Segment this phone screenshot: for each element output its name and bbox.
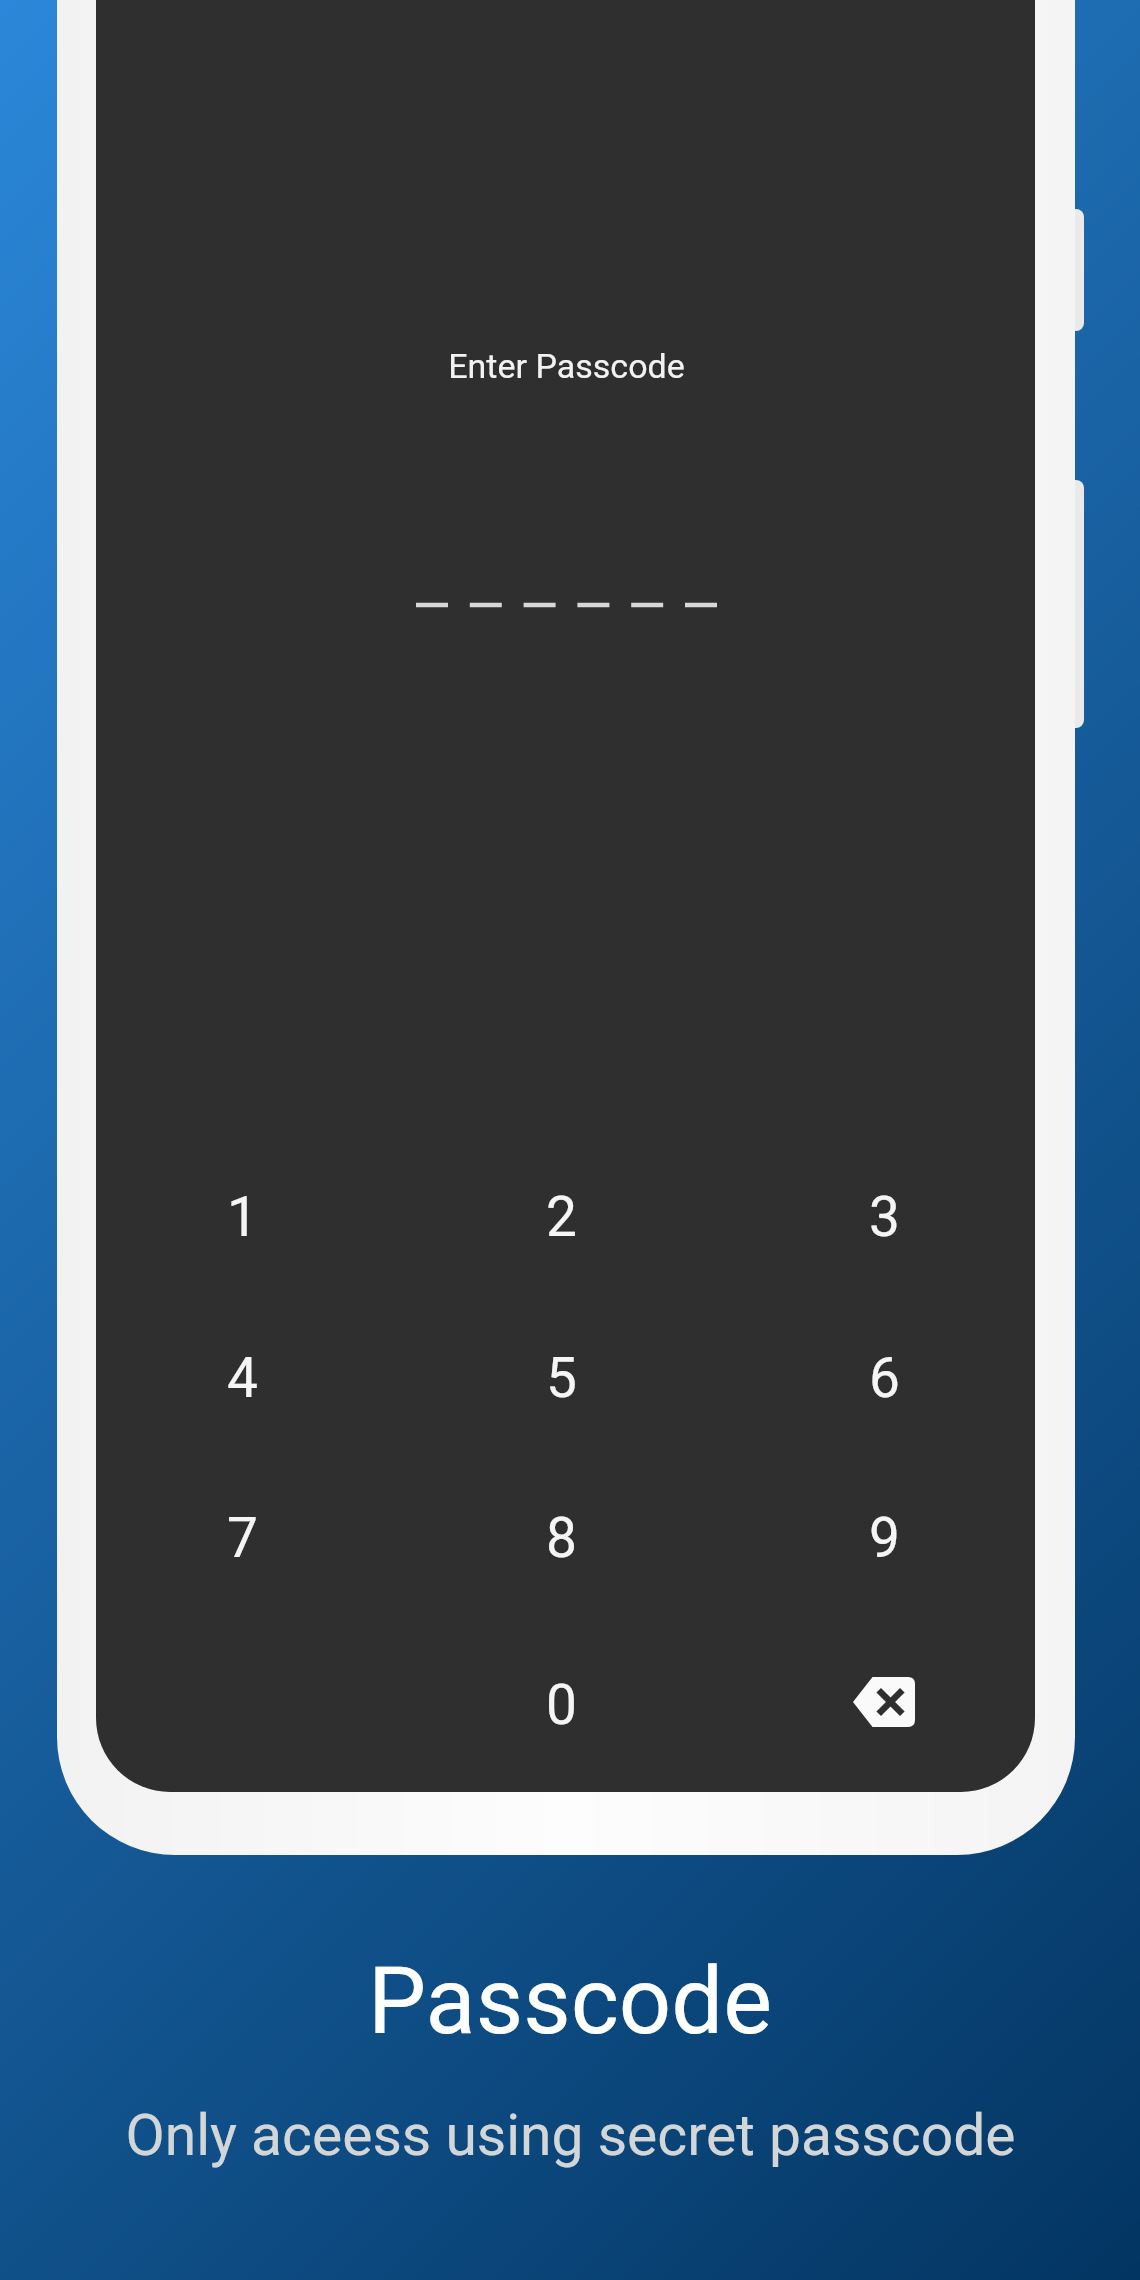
button[interactable]: 6	[784, 1296, 984, 1460]
button[interactable]: 4	[142, 1296, 342, 1460]
staticText: 1	[227, 1185, 258, 1249]
button[interactable]: 0	[461, 1623, 661, 1787]
button[interactable]: 3	[784, 1135, 984, 1299]
button[interactable]: 1	[142, 1135, 342, 1299]
button[interactable]: 7	[142, 1456, 342, 1620]
staticText: 0	[546, 1673, 577, 1737]
staticText: 3	[869, 1185, 900, 1249]
staticText: 7	[227, 1506, 258, 1570]
staticText: 5	[546, 1346, 577, 1410]
staticText: 6	[869, 1346, 900, 1410]
button[interactable]: 5	[461, 1296, 661, 1460]
staticText: 2	[546, 1185, 577, 1249]
staticText: 4	[227, 1346, 258, 1410]
staticText: Only aceess using secret passcode	[125, 2102, 1016, 2169]
button[interactable]: Backspace	[784, 1620, 984, 1784]
button[interactable]: 9	[784, 1456, 984, 1620]
button[interactable]: 8	[461, 1456, 661, 1620]
staticText: 8	[546, 1506, 577, 1570]
staticText: 9	[869, 1506, 900, 1570]
button[interactable]: 2	[461, 1135, 661, 1299]
staticText: Enter Passcode	[448, 346, 685, 386]
staticText: Passcode	[368, 1948, 772, 2056]
